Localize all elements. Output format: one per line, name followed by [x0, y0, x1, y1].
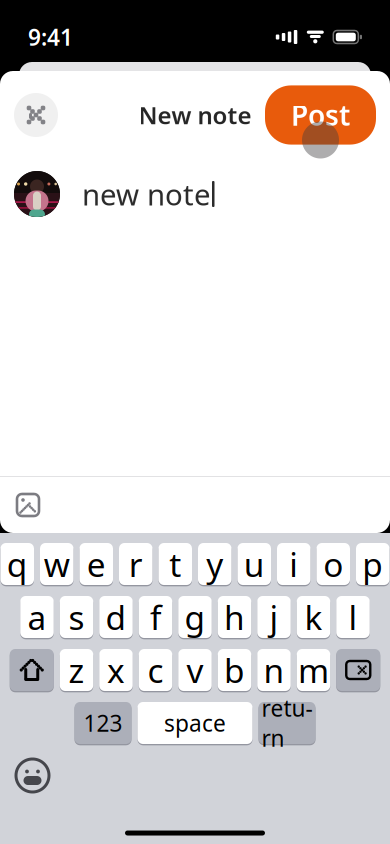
button[interactable]: w — [40, 542, 73, 586]
button[interactable]: e — [79, 542, 113, 586]
staticText: g — [184, 595, 205, 639]
staticText: e — [87, 542, 106, 586]
staticText: b — [224, 648, 245, 692]
button[interactable]: o — [316, 542, 350, 586]
staticText: a — [27, 595, 46, 639]
button[interactable]: s — [60, 595, 93, 639]
button[interactable]: r — [119, 542, 152, 586]
staticText: i — [289, 542, 298, 586]
button[interactable]: p — [356, 542, 389, 586]
button[interactable]: c — [139, 648, 172, 692]
button[interactable]: a — [20, 595, 54, 639]
staticText: d — [105, 595, 126, 639]
staticText: new note — [82, 174, 211, 213]
staticText: q — [7, 542, 28, 586]
button[interactable]: k — [297, 595, 330, 639]
button[interactable]: b — [218, 648, 251, 692]
staticText: w — [44, 542, 70, 586]
button[interactable]: Emoji keyboard — [0, 754, 49, 797]
staticText: Post — [291, 96, 350, 134]
staticText: p — [362, 542, 383, 586]
staticText: m — [298, 648, 329, 692]
button[interactable]: Delete — [336, 648, 380, 692]
button[interactable]: z — [60, 648, 93, 692]
button[interactable]: space — [137, 701, 252, 745]
button[interactable]: v — [178, 648, 212, 692]
staticText: return — [261, 693, 312, 753]
button[interactable]: t — [158, 542, 192, 586]
staticText: u — [244, 542, 265, 586]
button[interactable]: Post — [265, 85, 376, 145]
staticText: l — [348, 595, 357, 639]
button[interactable]: u — [237, 542, 271, 586]
staticText: o — [323, 542, 343, 586]
staticText: f — [150, 595, 161, 639]
button[interactable]: m — [297, 648, 330, 692]
staticText: n — [263, 648, 284, 692]
button[interactable]: y — [198, 542, 231, 586]
staticText: x — [107, 648, 125, 692]
button[interactable]: Add photo — [0, 477, 39, 533]
button[interactable]: j — [257, 595, 291, 639]
button[interactable]: Shift — [10, 648, 54, 692]
staticText: s — [68, 595, 84, 639]
staticText: t — [169, 542, 181, 586]
button[interactable]: d — [99, 595, 133, 639]
button[interactable]: return — [258, 701, 315, 745]
staticText: v — [186, 648, 203, 692]
button[interactable]: f — [139, 595, 172, 639]
button[interactable]: 123 — [74, 701, 131, 745]
staticText: h — [224, 595, 245, 639]
button[interactable]: n — [257, 648, 291, 692]
staticText: space — [164, 708, 226, 738]
button[interactable]: q — [0, 542, 34, 586]
staticText: r — [129, 542, 143, 586]
button[interactable]: x — [99, 648, 133, 692]
staticText: 9:41 — [28, 22, 73, 52]
button[interactable]: g — [178, 595, 212, 639]
staticText: c — [147, 648, 163, 692]
staticText: k — [304, 595, 322, 639]
staticText: New note — [138, 99, 251, 131]
button[interactable]: Close — [14, 93, 58, 137]
button[interactable]: h — [218, 595, 251, 639]
button[interactable]: i — [277, 542, 310, 586]
staticText: 123 — [83, 708, 122, 738]
staticText: z — [68, 648, 84, 692]
button[interactable]: l — [336, 595, 370, 639]
staticText: y — [206, 542, 223, 586]
staticText: j — [269, 595, 278, 639]
